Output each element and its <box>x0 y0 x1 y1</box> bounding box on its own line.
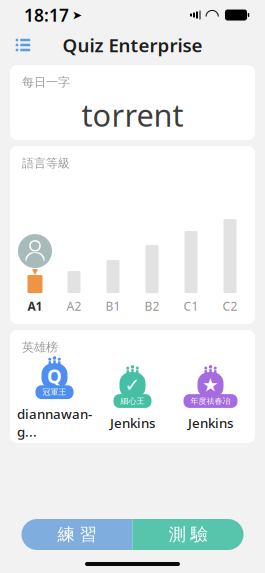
staticText: Q <box>47 364 62 389</box>
staticText: 語言等級 <box>22 156 70 171</box>
staticText: B1 <box>105 298 120 314</box>
staticText: 冠軍王 <box>42 387 66 397</box>
staticText: diannawang... <box>17 405 92 440</box>
staticText: Quiz Enterprise <box>62 33 202 57</box>
staticText: 細心王 <box>120 396 144 406</box>
button[interactable]: ★ <box>171 366 249 432</box>
staticText: Jenkins <box>188 414 233 432</box>
staticText: Jenkins <box>110 414 155 432</box>
staticText: 每日一字 <box>22 75 70 90</box>
staticText: A2 <box>66 298 81 314</box>
button[interactable]: ✓ <box>93 366 171 432</box>
staticText: ▼ <box>32 267 38 276</box>
staticText: torrent <box>81 94 183 135</box>
staticText: ✓ <box>124 374 140 396</box>
staticText: 測 驗 <box>168 524 207 545</box>
staticText: ➤ <box>72 8 82 22</box>
staticText: 練 習 <box>57 524 96 545</box>
button[interactable]: 測 驗 <box>132 519 243 550</box>
staticText: 年度祛春冶 <box>190 396 230 406</box>
staticText: A1 <box>27 298 42 314</box>
staticText: C2 <box>222 298 237 314</box>
button[interactable]: Q <box>15 357 93 440</box>
staticText: ★ <box>202 374 219 396</box>
staticText: ◠ <box>205 5 218 25</box>
staticText: 18:17 <box>24 3 69 26</box>
staticText: B2 <box>144 298 159 314</box>
staticText: 英雄榜 <box>22 340 58 355</box>
button[interactable]: 練 習 <box>21 519 132 550</box>
button[interactable]: Menu <box>6 30 40 60</box>
staticText: C1 <box>183 298 198 314</box>
